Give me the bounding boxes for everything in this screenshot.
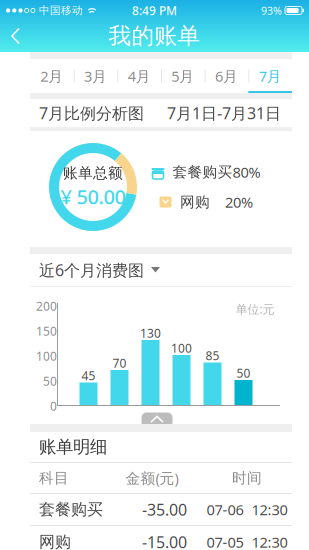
staticText: 3月: [84, 66, 107, 86]
staticText: 130: [140, 325, 161, 341]
staticText: 07-05 12:30: [206, 532, 287, 550]
staticText: 6月: [215, 66, 238, 86]
staticText: 7月: [259, 66, 282, 86]
staticText: 近6个月消费图: [39, 259, 144, 281]
button[interactable]: Back: [3, 22, 33, 49]
button[interactable]: 套餐购买: [30, 494, 292, 525]
staticText: 20%: [225, 192, 253, 212]
staticText: 金额(元): [125, 468, 178, 488]
staticText: 时间: [232, 469, 262, 487]
staticText: 7月1日-7月31日: [167, 102, 281, 124]
staticText: 93%: [261, 3, 282, 18]
staticText: 100: [171, 340, 192, 356]
staticText: 7月比例分析图: [39, 102, 144, 124]
staticText: 70: [112, 355, 126, 371]
staticText: 4月: [128, 66, 151, 86]
button[interactable]: 5月: [161, 59, 205, 93]
staticText: 账单明细: [39, 436, 107, 458]
staticText: 套餐购买: [39, 500, 103, 519]
staticText: 网购: [39, 532, 71, 550]
staticText: 45: [81, 367, 95, 383]
staticText: 我的账单: [108, 22, 200, 50]
staticText: 账单总额: [63, 164, 123, 182]
staticText: 80%: [232, 162, 260, 182]
staticText: 50: [236, 365, 250, 381]
staticText: 网购: [180, 193, 210, 211]
staticText: -35.00: [142, 499, 187, 520]
button[interactable]: 6月: [205, 59, 248, 93]
staticText: 0: [50, 398, 57, 414]
staticText: 07-06 12:30: [206, 500, 287, 519]
staticText: 50: [43, 373, 57, 389]
button[interactable]: 近6个月消费图: [30, 254, 169, 286]
staticText: 中国移动: [39, 4, 83, 17]
staticText: ¥ 50.00: [60, 183, 125, 210]
staticText: 单位:元: [235, 301, 274, 317]
staticText: 套餐购买: [172, 163, 232, 181]
staticText: -15.00: [142, 531, 187, 550]
button[interactable]: 网购: [30, 526, 292, 550]
staticText: 85: [205, 347, 219, 363]
button[interactable]: 7月: [248, 59, 292, 93]
button[interactable]: 4月: [117, 59, 161, 93]
staticText: 5月: [171, 66, 194, 86]
staticText: 100: [36, 348, 57, 364]
staticText: 科目: [39, 469, 69, 487]
staticText: 8:49 PM: [132, 2, 177, 18]
button[interactable]: 3月: [74, 59, 117, 93]
button[interactable]: 2月: [30, 59, 74, 93]
staticText: 2月: [40, 66, 63, 86]
staticText: 200: [36, 298, 57, 314]
staticText: 150: [36, 323, 57, 339]
